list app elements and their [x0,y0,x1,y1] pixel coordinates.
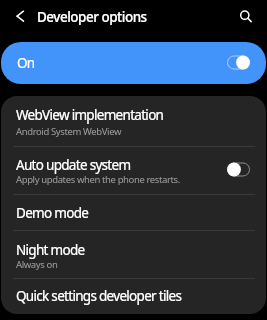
button[interactable]: On [1,42,266,84]
staticText: Apply updates when the phone restarts. [16,173,180,186]
button[interactable]: Auto update system [1,147,266,194]
button[interactable]: Quick settings developer tiles [1,279,266,314]
staticText: Quick settings developer tiles [16,287,182,305]
button[interactable]: Search [235,0,267,32]
button[interactable]: Demo mode [1,195,266,230]
button[interactable]: WebView implementation [1,96,266,146]
staticText: On [17,54,35,72]
staticText: Developer options [37,8,147,26]
staticText: Auto update system [16,156,131,174]
button[interactable]: Night mode [1,231,266,278]
staticText: WebView implementation [16,106,164,124]
staticText: Android System WebView [16,125,122,138]
staticText: Demo mode [16,204,89,222]
staticText: Always on [16,258,58,271]
staticText: Night mode [16,241,85,259]
button[interactable]: Navigate up [4,0,36,32]
